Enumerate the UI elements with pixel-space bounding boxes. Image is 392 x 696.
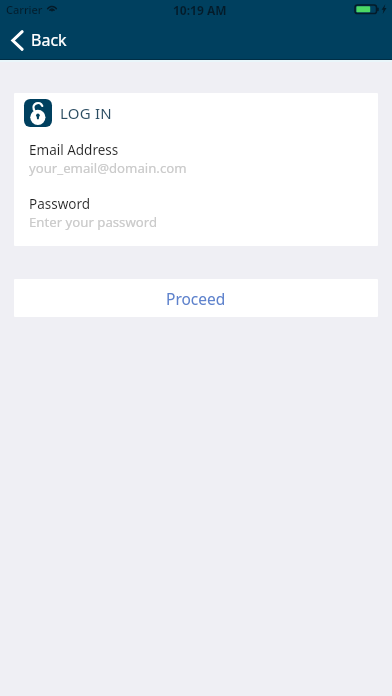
button[interactable]: Back [5,26,77,54]
button[interactable]: Password [14,195,378,231]
staticText: LOG IN [60,103,112,123]
staticText: Password [29,195,91,213]
staticText: 10:19 AM [173,2,227,18]
button[interactable]: Proceed [14,279,378,317]
staticText: Carrier [6,2,43,17]
button[interactable]: Email Address [14,141,378,177]
staticText: Email Address [29,141,119,159]
staticText: Enter your password [29,213,158,231]
staticText: Proceed [166,288,226,309]
staticText: Back [31,29,67,51]
staticText: your_email@domain.com [29,159,187,177]
